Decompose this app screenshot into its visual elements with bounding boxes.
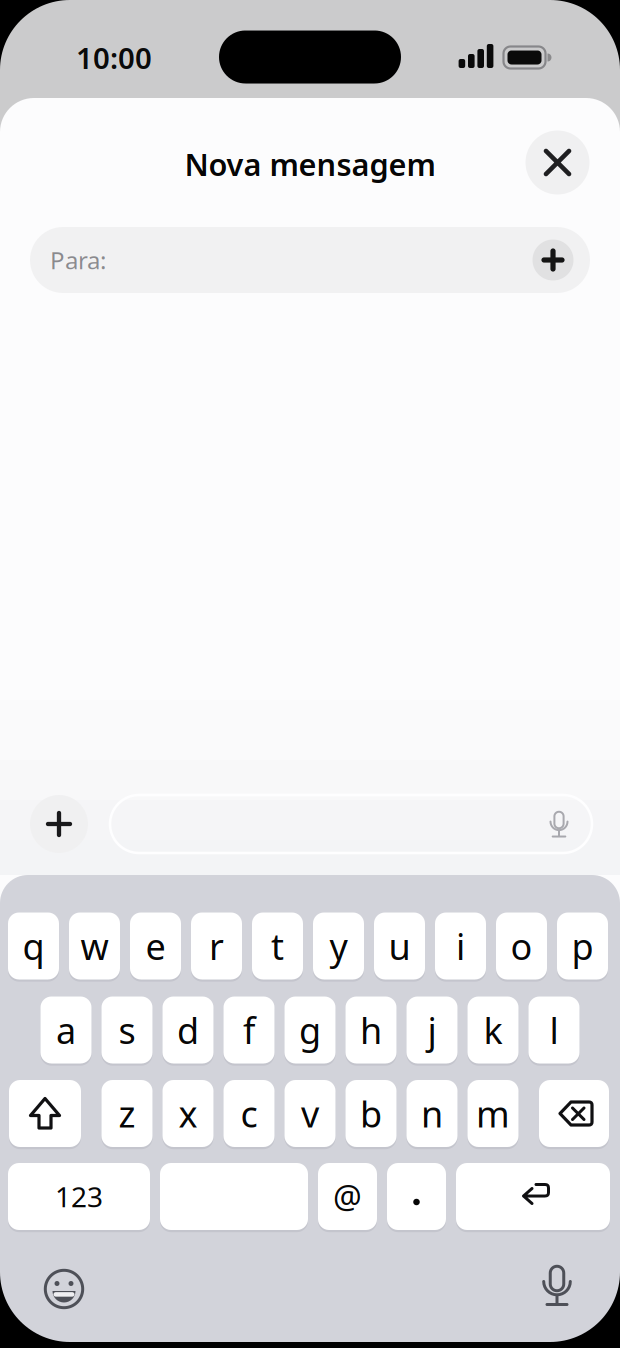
button[interactable]: n xyxy=(406,1080,457,1147)
staticText: 123 xyxy=(55,1178,103,1215)
button[interactable]: a xyxy=(40,996,91,1063)
staticText: o xyxy=(510,922,532,970)
button[interactable]: i xyxy=(435,912,486,979)
button[interactable]: b xyxy=(345,1080,396,1147)
button[interactable]: k xyxy=(467,996,518,1063)
staticText: l xyxy=(549,1006,558,1054)
button[interactable]: s xyxy=(101,996,152,1063)
button[interactable]: q xyxy=(8,912,59,979)
button[interactable]: w xyxy=(69,912,120,979)
staticText: j xyxy=(427,1006,436,1054)
staticText: p xyxy=(571,922,593,970)
button[interactable] xyxy=(30,795,88,853)
button[interactable]: y xyxy=(313,912,364,979)
button[interactable] xyxy=(539,802,579,846)
button[interactable] xyxy=(387,1163,446,1230)
button[interactable] xyxy=(9,1080,81,1147)
staticText: u xyxy=(388,922,410,970)
staticText: h xyxy=(360,1006,382,1054)
staticText: x xyxy=(178,1090,197,1137)
button[interactable]: c xyxy=(223,1080,274,1147)
button[interactable] xyxy=(534,1263,580,1309)
button[interactable]: o xyxy=(496,912,547,979)
button[interactable]: h xyxy=(345,996,396,1063)
button[interactable]: x xyxy=(162,1080,213,1147)
staticText: a xyxy=(56,1006,76,1054)
button[interactable]: m xyxy=(467,1080,518,1147)
staticText: Nova mensagem xyxy=(184,144,435,184)
staticText: w xyxy=(80,922,108,970)
button[interactable]: t xyxy=(252,912,303,979)
button[interactable]: f xyxy=(223,996,274,1063)
staticText: m xyxy=(476,1090,510,1137)
button[interactable]: @ xyxy=(318,1163,377,1230)
button[interactable] xyxy=(160,1163,308,1230)
button[interactable] xyxy=(110,795,592,853)
staticText: s xyxy=(118,1006,135,1054)
button[interactable]: Para: xyxy=(30,227,590,293)
button[interactable]: 123 xyxy=(8,1163,150,1230)
staticText: n xyxy=(421,1090,443,1137)
button[interactable]: v xyxy=(284,1080,335,1147)
button[interactable]: r xyxy=(191,912,242,979)
button[interactable]: g xyxy=(284,996,335,1063)
button[interactable]: j xyxy=(406,996,457,1063)
button[interactable]: d xyxy=(162,996,213,1063)
button[interactable] xyxy=(41,1266,87,1312)
staticText: z xyxy=(118,1090,135,1137)
button[interactable] xyxy=(456,1163,610,1230)
staticText: q xyxy=(22,922,44,970)
button[interactable] xyxy=(539,1080,609,1147)
staticText: f xyxy=(243,1006,255,1054)
button[interactable]: z xyxy=(101,1080,152,1147)
button[interactable]: l xyxy=(528,996,579,1063)
button[interactable]: u xyxy=(374,912,425,979)
staticText: @ xyxy=(333,1175,362,1218)
staticText: i xyxy=(456,922,465,970)
staticText: 10:00 xyxy=(76,38,152,77)
staticText: c xyxy=(240,1090,257,1137)
staticText: y xyxy=(329,922,347,970)
button[interactable] xyxy=(532,239,573,280)
staticText: g xyxy=(299,1006,321,1054)
button[interactable]: e xyxy=(130,912,181,979)
staticText: e xyxy=(145,922,165,970)
staticText: t xyxy=(271,922,284,970)
staticText: d xyxy=(177,1006,199,1054)
button[interactable] xyxy=(525,130,589,194)
staticText: b xyxy=(360,1090,382,1137)
staticText: v xyxy=(301,1090,319,1137)
staticText: r xyxy=(209,922,224,970)
staticText: k xyxy=(483,1006,502,1054)
button[interactable]: p xyxy=(557,912,608,979)
staticText: Para: xyxy=(50,244,106,276)
